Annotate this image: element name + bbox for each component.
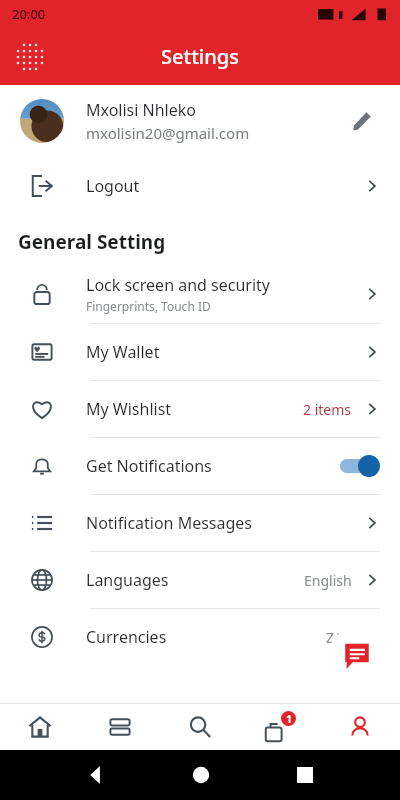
staticText: My Wallet xyxy=(86,341,160,363)
button[interactable]: Categories xyxy=(80,703,160,750)
button[interactable]: Languages xyxy=(0,552,400,608)
button[interactable]: Get Notifications toggle xyxy=(336,455,380,477)
button[interactable]: Apps menu xyxy=(8,35,52,79)
button[interactable]: Get Notifications xyxy=(0,438,400,494)
button[interactable]: Profile xyxy=(320,703,400,750)
staticText: ZAR xyxy=(326,628,352,647)
staticText: 20:00 xyxy=(12,5,46,23)
staticText: General Setting xyxy=(18,229,166,255)
staticText: Notification Messages xyxy=(86,512,253,534)
button[interactable]: My Wishlist xyxy=(0,381,400,437)
staticText: Mxolisi Nhleko xyxy=(86,99,196,121)
staticText: Currencies xyxy=(86,626,167,648)
button[interactable]: Chat xyxy=(328,627,386,685)
button[interactable]: Logout xyxy=(0,157,400,215)
button[interactable]: Search xyxy=(160,703,240,750)
button[interactable]: Currencies xyxy=(0,609,400,665)
staticText: 2 items xyxy=(303,400,352,419)
staticText: English xyxy=(304,571,352,590)
button[interactable]: Lock screen and security xyxy=(0,265,400,323)
button[interactable]: Home xyxy=(0,703,80,750)
staticText: Languages xyxy=(86,569,169,591)
staticText: mxolisin20@gmail.com xyxy=(86,123,250,143)
staticText: Get Notifications xyxy=(86,455,212,477)
staticText: Lock screen and security xyxy=(86,274,270,296)
button[interactable]: Cart, 1 item xyxy=(240,703,320,750)
button[interactable]: Mxolisi Nhleko xyxy=(0,85,400,157)
staticText: Fingerprints, Touch ID xyxy=(86,298,211,314)
button[interactable]: Edit profile xyxy=(344,103,380,139)
button[interactable]: Notification Messages xyxy=(0,495,400,551)
button[interactable]: My Wallet xyxy=(0,324,400,380)
staticText: My Wishlist xyxy=(86,398,172,420)
staticText: Settings xyxy=(161,43,239,70)
staticText: 1 xyxy=(286,712,292,726)
staticText: Logout xyxy=(86,175,140,197)
